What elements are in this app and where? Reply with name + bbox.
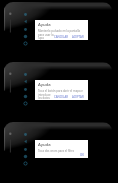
- button[interactable]: CANCELAR: [52, 35, 70, 39]
- button[interactable]: Navigation: [22, 86, 28, 92]
- staticText: Ayuda: [38, 142, 51, 148]
- button[interactable]: Navigation: [22, 131, 28, 137]
- button[interactable]: Navigation: [22, 26, 28, 32]
- staticText: ACEPTAR: [72, 95, 84, 99]
- button[interactable]: Navigation: [22, 93, 28, 99]
- button[interactable]: Navigation: [22, 100, 28, 106]
- staticText: Ayuda: [38, 82, 51, 88]
- staticText: Toca dos veces para el filtro: [38, 149, 75, 153]
- button[interactable]: CANCELAR: [52, 95, 70, 99]
- staticText: CANCELAR: [54, 35, 68, 39]
- button[interactable]: Navigation: [22, 40, 28, 46]
- button[interactable]: OK: [78, 153, 86, 157]
- button[interactable]: Navigation: [22, 11, 28, 17]
- button[interactable]: Navigation: [22, 71, 28, 77]
- staticText: ACEPTAR: [72, 35, 84, 39]
- button[interactable]: ACEPTAR: [70, 95, 86, 99]
- button[interactable]: Navigation: [22, 33, 28, 39]
- button[interactable]: Navigation: [22, 146, 28, 152]
- button[interactable]: Navigation: [22, 18, 28, 24]
- button[interactable]: Navigation: [22, 138, 28, 144]
- staticText: Toca el botón para abrir el mapa e intro…: [38, 89, 85, 99]
- staticText: Ayuda: [38, 22, 51, 28]
- button[interactable]: Navigation: [22, 153, 28, 159]
- staticText: Mantenlo pulsado en la pantalla para usa…: [38, 29, 85, 39]
- staticText: CANCELAR: [54, 95, 68, 99]
- staticText: OK: [80, 153, 84, 157]
- button[interactable]: Navigation: [22, 78, 28, 84]
- button[interactable]: Navigation: [22, 160, 28, 166]
- button[interactable]: ACEPTAR: [70, 35, 86, 39]
